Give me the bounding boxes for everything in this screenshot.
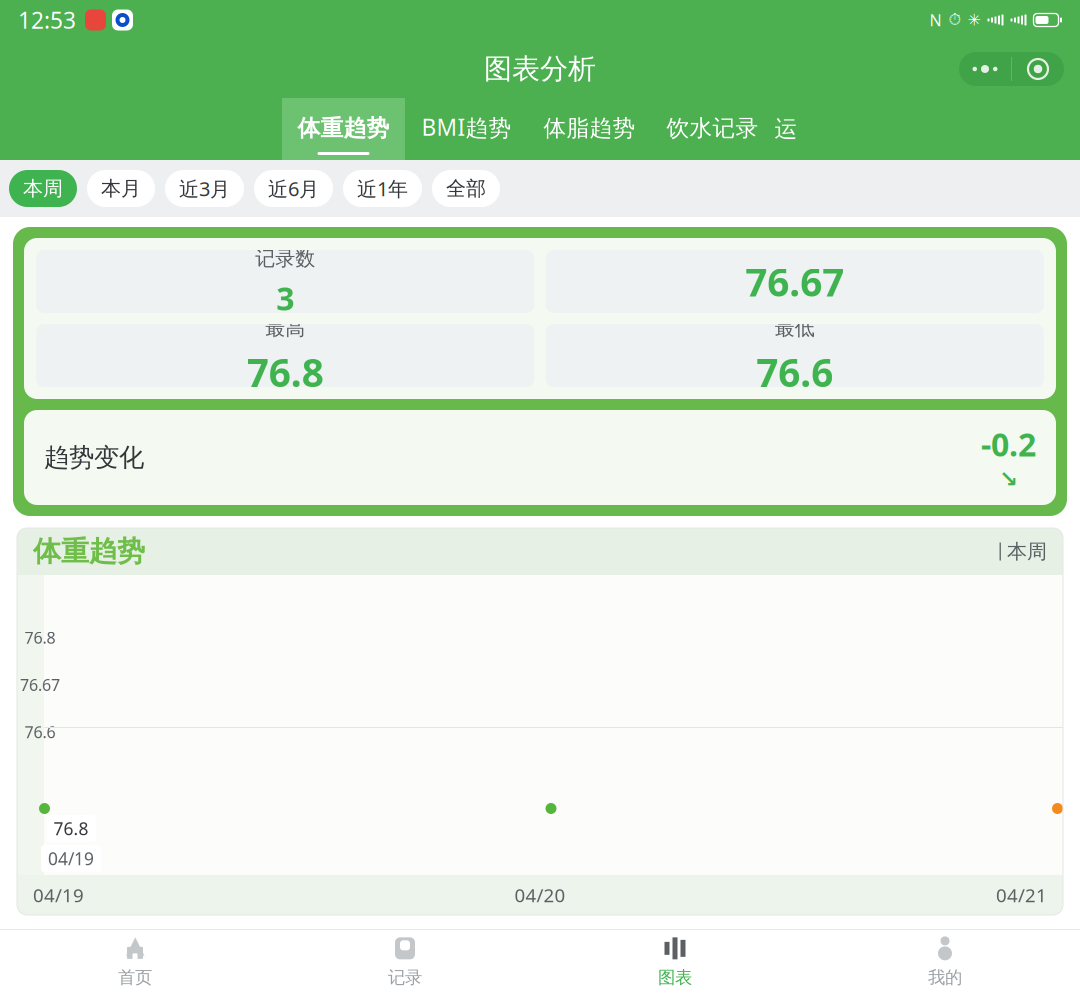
button[interactable]: 体重趋势 (282, 98, 405, 160)
button[interactable]: BMI趋势 (405, 98, 528, 160)
button[interactable]: ▲ (0, 930, 270, 994)
staticText: 记录数 (255, 246, 315, 271)
button[interactable]: 本周 (9, 170, 77, 207)
staticText: 76.8 (53, 817, 88, 840)
staticText: 趋势变化 (44, 442, 144, 473)
button[interactable]: 记录 (270, 930, 540, 994)
staticText: 近3月 (179, 175, 230, 202)
staticText: kg (785, 317, 805, 340)
staticText: 3 (276, 277, 294, 319)
staticText: ⏱ (948, 12, 960, 28)
staticText: 04/19 (48, 847, 94, 870)
staticText: BMI趋势 (421, 112, 511, 142)
staticText: 76.67 (20, 674, 60, 695)
staticText: 平均值 (765, 225, 825, 250)
button[interactable]: 体脂趋势 (528, 98, 651, 160)
staticText: 76.67 (745, 256, 844, 307)
staticText: 近1年 (357, 175, 408, 202)
staticText: 图表分析 (484, 52, 596, 86)
staticText: 体脂趋势 (543, 114, 635, 142)
staticText: 体重趋势 (297, 114, 389, 142)
staticText: -0.2 (981, 423, 1036, 465)
staticText: 运 (774, 115, 797, 143)
button[interactable]: 本月 (87, 170, 155, 207)
staticText: 饮水记录 (666, 114, 758, 142)
staticText: 首页 (118, 967, 152, 988)
staticText: N (929, 9, 941, 31)
staticText: 12:53 (18, 5, 76, 35)
staticText: 图表 (658, 967, 692, 988)
staticText: 04/21 (996, 883, 1047, 907)
button[interactable]: 运动记录 (774, 98, 798, 160)
staticText: 76.6 (24, 721, 55, 743)
button[interactable]: 近6月 (254, 170, 333, 207)
staticText: 76.8 (247, 346, 324, 398)
staticText: 76.6 (756, 346, 833, 398)
staticText: 记录 (388, 967, 422, 988)
staticText: 近6月 (268, 175, 319, 202)
staticText: 本月 (101, 176, 141, 201)
staticText: 体重趋势 (33, 534, 145, 569)
staticText: 全部 (446, 176, 486, 201)
button[interactable]: 近3月 (165, 170, 244, 207)
button[interactable]: 图表 (540, 930, 810, 994)
staticText: 本周 (23, 176, 63, 201)
button[interactable]: 我的 (810, 930, 1080, 994)
staticText: ✳ (967, 11, 980, 29)
button[interactable]: 近1年 (343, 170, 422, 207)
staticText: 04/20 (514, 883, 565, 907)
button[interactable]: 饮水记录 (651, 98, 774, 160)
staticText: 最低 (775, 316, 815, 340)
staticText: 76.8 (24, 627, 55, 648)
staticText: 最高 (265, 316, 305, 340)
staticText: ↘ (999, 466, 1018, 492)
staticText: 我的 (928, 967, 962, 988)
staticText: 04/19 (33, 883, 84, 907)
button[interactable]: 全部 (432, 170, 500, 207)
staticText: 本周 (1007, 539, 1047, 564)
staticText: ▲ (126, 931, 144, 958)
button[interactable]: 更多选项 (959, 52, 1064, 86)
